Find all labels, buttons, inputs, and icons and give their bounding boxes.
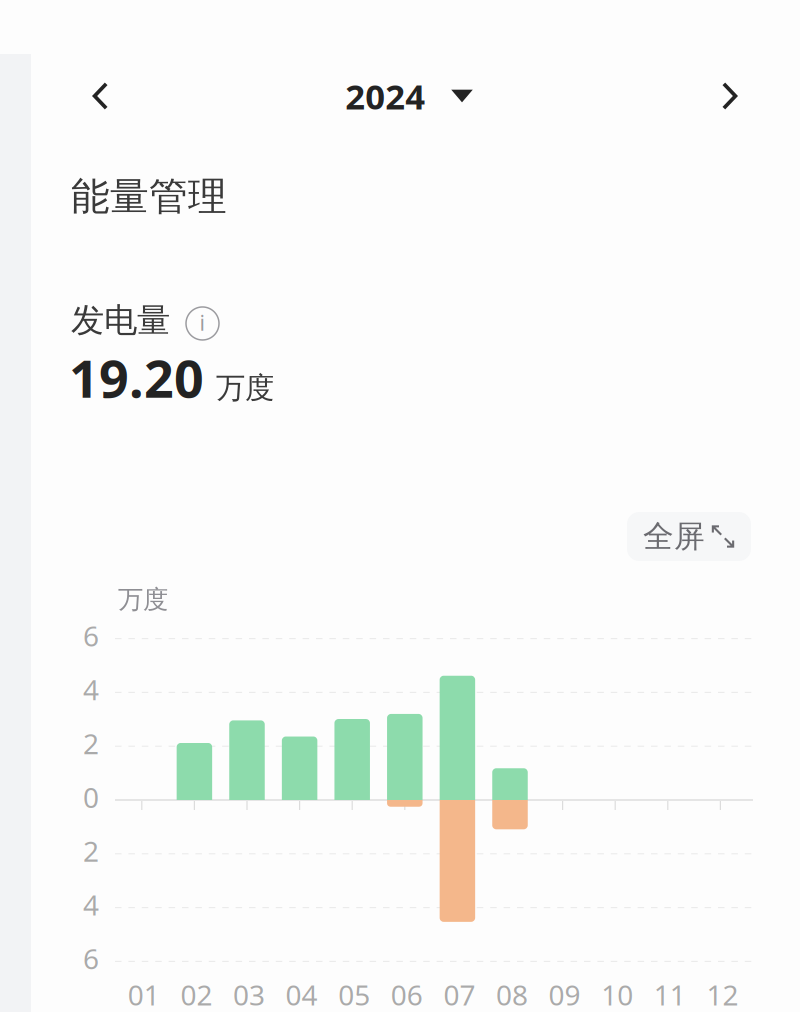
staticText: 03	[233, 976, 265, 1012]
staticText: 02	[180, 976, 212, 1012]
staticText: 08	[496, 976, 528, 1012]
button[interactable]: Next year	[699, 65, 761, 127]
staticText: 07	[443, 976, 475, 1012]
staticText: 0	[83, 778, 99, 816]
staticText: 2	[83, 832, 99, 869]
staticText: 万度	[118, 584, 168, 615]
staticText: 能量管理	[71, 173, 227, 220]
staticText: i	[199, 308, 205, 337]
staticText: 发电量	[71, 300, 170, 341]
button[interactable]: Previous year	[69, 65, 131, 127]
staticText: 4	[83, 886, 99, 923]
staticText: 06	[391, 976, 423, 1012]
staticText: 05	[338, 976, 370, 1012]
staticText: 01	[128, 976, 160, 1012]
staticText: 6	[83, 617, 99, 654]
staticText: 04	[286, 976, 318, 1012]
staticText: 10	[601, 976, 633, 1012]
staticText: 6	[83, 940, 99, 977]
staticText: 11	[654, 976, 686, 1012]
staticText: 万度	[216, 370, 274, 406]
staticText: 12	[706, 976, 738, 1012]
staticText: 2	[83, 725, 99, 762]
button[interactable]: 2024	[319, 65, 499, 127]
button[interactable]: About 发电量	[186, 307, 219, 340]
staticText: 全屏	[643, 518, 705, 555]
staticText: 4	[83, 671, 99, 708]
button[interactable]: 全屏	[627, 512, 751, 561]
staticText: 09	[549, 976, 581, 1012]
staticText: 19.20	[69, 343, 204, 412]
staticText: 2024	[345, 73, 425, 119]
